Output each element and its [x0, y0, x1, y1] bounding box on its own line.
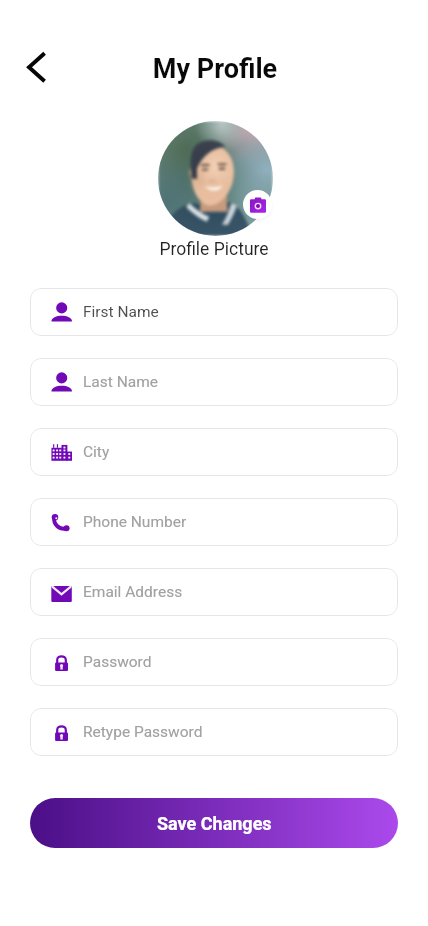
button[interactable]: Back	[14, 45, 59, 90]
button[interactable]: City	[30, 428, 398, 476]
staticText: Profile Picture	[0, 239, 428, 260]
staticText: Phone Number	[83, 513, 187, 531]
staticText: Save Changes	[157, 813, 272, 834]
staticText: Email Address	[83, 583, 183, 601]
staticText: City	[83, 443, 110, 461]
button[interactable]: First Name	[30, 288, 398, 336]
button[interactable]: Phone Number	[30, 498, 398, 546]
button[interactable]: Save Changes	[30, 798, 398, 848]
button[interactable]: Email Address	[30, 568, 398, 616]
staticText: Password	[83, 653, 152, 671]
staticText: First Name	[83, 303, 159, 321]
staticText: Last Name	[83, 373, 158, 391]
button[interactable]: Last Name	[30, 358, 398, 406]
staticText: Retype Password	[83, 723, 203, 741]
staticText: My Profile	[1, 53, 428, 85]
button[interactable]: Change profile picture	[243, 190, 272, 219]
button[interactable]: Retype Password	[30, 708, 398, 756]
button[interactable]: Password	[30, 638, 398, 686]
